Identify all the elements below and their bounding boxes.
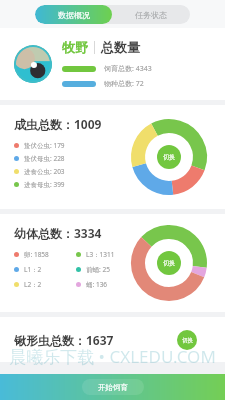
staticText: 成虫总数：1009 [14, 116, 102, 132]
staticText: L1：2 [24, 265, 42, 274]
staticText: 晨曦乐下载 • CXLEDU.COM [9, 345, 216, 368]
staticText: 进食母虫: 399 [24, 180, 65, 189]
staticText: 任务状态 [135, 10, 167, 20]
staticText: 锹形虫总数：1637 [14, 332, 114, 348]
staticText: L3：1311 [86, 250, 115, 259]
button[interactable]: 切换 [177, 330, 197, 350]
staticText: 物种总数: 72 [104, 79, 144, 89]
button[interactable]: 成虫总数：1009 [0, 105, 225, 209]
staticText: 开始饲育 [98, 383, 128, 392]
staticText: 切换 [182, 337, 193, 344]
staticText: 饲育总数: 4343 [104, 64, 152, 74]
staticText: 蛰伏母虫: 228 [24, 154, 65, 163]
staticText: 卵: 1858 [24, 250, 49, 259]
staticText: 数据概况 [58, 10, 90, 20]
staticText: L2：2 [24, 280, 42, 289]
staticText: 切换 [163, 153, 175, 161]
staticText: 总数量 [101, 39, 140, 55]
staticText: 切换 [163, 259, 175, 267]
staticText: 蛹: 136 [86, 280, 108, 289]
button[interactable]: 切换 [157, 251, 181, 275]
button[interactable]: 切换 [157, 145, 181, 169]
staticText: 进食公虫: 203 [24, 167, 65, 176]
staticText: 前蛹: 25 [86, 265, 110, 274]
staticText: 蛰伏公虫: 179 [24, 141, 65, 150]
button[interactable]: 开始饲育 [82, 379, 144, 395]
button[interactable]: 幼体总数：3334 [0, 214, 225, 312]
button[interactable]: 锹形虫总数：1637 [0, 317, 225, 362]
button[interactable]: 任务状态 [112, 5, 190, 24]
button[interactable] [14, 45, 52, 83]
staticText: 牧野 [62, 39, 88, 55]
button[interactable]: 数据概况 [35, 5, 112, 24]
staticText: 幼体总数：3334 [14, 225, 102, 241]
